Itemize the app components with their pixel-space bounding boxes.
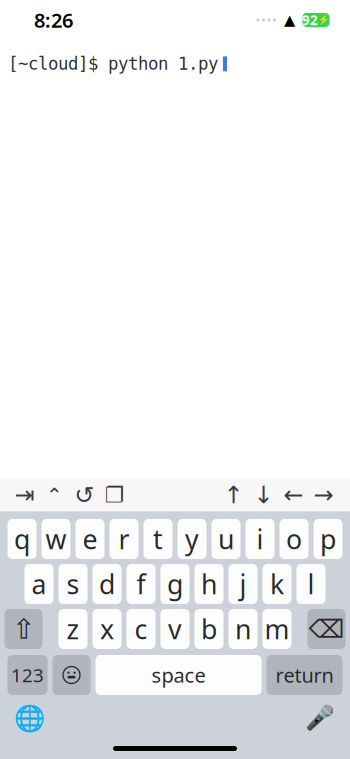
button[interactable]: Delete (307, 609, 345, 649)
button[interactable]: l (296, 564, 325, 604)
staticText: x (100, 611, 114, 647)
staticText: ↓ (253, 481, 273, 509)
staticText: ↑ (223, 481, 243, 509)
button[interactable]: e (75, 519, 104, 559)
button[interactable]: h (194, 564, 223, 604)
button[interactable]: space (95, 655, 261, 695)
button[interactable]: Control (41, 479, 68, 510)
staticText: q (14, 521, 30, 557)
button[interactable]: Emoji (52, 655, 90, 695)
staticText: h (201, 566, 217, 602)
staticText: k (270, 566, 284, 602)
staticText: w (45, 521, 66, 557)
staticText: y (185, 521, 199, 557)
staticText: return (275, 662, 333, 688)
button[interactable]: d (92, 564, 121, 604)
staticText: b (201, 611, 217, 647)
staticText: m (264, 611, 289, 647)
staticText: e (82, 521, 97, 557)
button[interactable]: f (126, 564, 155, 604)
button[interactable]: Tab (11, 479, 38, 510)
button[interactable]: z (58, 609, 87, 649)
button[interactable]: j (228, 564, 257, 604)
staticText: a (31, 566, 46, 602)
button[interactable]: q (7, 519, 36, 559)
button[interactable]: o (279, 519, 308, 559)
button[interactable]: Move down (250, 479, 277, 510)
button[interactable]: History (71, 479, 98, 510)
staticText: 123 (11, 663, 44, 687)
staticText: ↺ (74, 481, 94, 509)
staticText: i (256, 521, 263, 557)
button[interactable]: Dictate (304, 703, 336, 733)
staticText: ⌃ (46, 484, 63, 506)
button[interactable]: p (313, 519, 342, 559)
button[interactable]: c (126, 609, 155, 649)
staticText: d (99, 566, 115, 602)
button[interactable]: s (58, 564, 87, 604)
button[interactable]: r (109, 519, 138, 559)
button[interactable]: Move right (310, 479, 337, 510)
button[interactable]: 123 (7, 655, 47, 695)
staticText: c (134, 611, 147, 647)
staticText: ⚡ (318, 15, 330, 25)
staticText: n (235, 611, 251, 647)
staticText: z (66, 611, 79, 647)
staticText: v (168, 611, 182, 647)
button[interactable]: a (24, 564, 53, 604)
button[interactable]: k (262, 564, 291, 604)
button[interactable]: n (228, 609, 257, 649)
button[interactable]: m (262, 609, 291, 649)
staticText: ⇧ (12, 613, 35, 645)
staticText: r (118, 521, 129, 557)
button[interactable]: Paste (101, 479, 128, 510)
staticText: u (218, 521, 234, 557)
button[interactable]: Shift (4, 609, 42, 649)
button[interactable]: return (266, 655, 342, 695)
staticText: p (320, 521, 336, 557)
button[interactable]: i (245, 519, 274, 559)
staticText: 92 (302, 11, 318, 29)
staticText: o (286, 521, 302, 557)
staticText: l (307, 566, 314, 602)
staticText: ❐ (105, 483, 124, 507)
button[interactable]: y (177, 519, 206, 559)
staticText: space (151, 662, 205, 688)
staticText: → (313, 481, 333, 509)
button[interactable]: v (160, 609, 189, 649)
staticText: ← (283, 481, 303, 509)
staticText: f (136, 566, 145, 602)
button[interactable]: Next keyboard (14, 703, 46, 733)
button[interactable]: b (194, 609, 223, 649)
button[interactable]: g (160, 564, 189, 604)
button[interactable]: Move up (220, 479, 247, 510)
staticText: g (167, 566, 183, 602)
staticText: [~cloud]$ python 1.py (8, 54, 218, 74)
staticText: 🎤 (305, 704, 335, 732)
button[interactable]: x (92, 609, 121, 649)
button[interactable]: u (211, 519, 240, 559)
button[interactable]: t (143, 519, 172, 559)
staticText: ⇥ (14, 481, 34, 509)
staticText: ⌫ (308, 615, 344, 643)
staticText: ▲ (284, 12, 295, 28)
button[interactable]: Move left (280, 479, 307, 510)
staticText: j (239, 566, 246, 602)
button[interactable]: w (41, 519, 70, 559)
staticText: s (66, 566, 79, 602)
staticText: 8:26 (34, 7, 73, 33)
staticText: 🌐 (14, 703, 46, 732)
staticText: t (153, 521, 163, 557)
